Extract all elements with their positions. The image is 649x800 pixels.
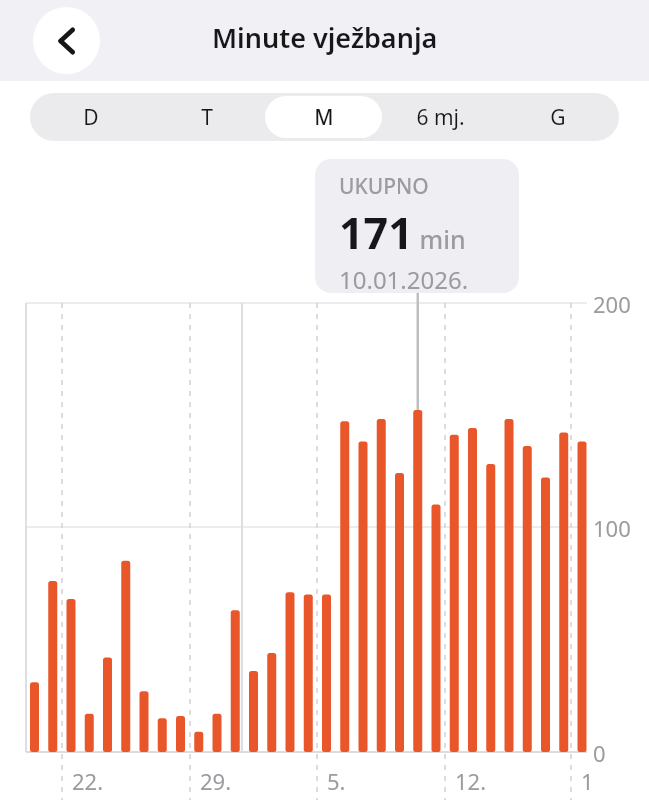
staticText: 6 mj. [416, 103, 465, 132]
staticText: 1 [581, 766, 594, 796]
staticText: min [413, 222, 466, 256]
staticText: 171 [339, 203, 413, 262]
staticText: 200 [593, 289, 631, 319]
staticText: 5. [327, 766, 346, 796]
button[interactable]: 6 mj. [382, 96, 499, 138]
staticText: T [201, 103, 213, 132]
staticText: UKUPNO [339, 172, 429, 201]
staticText: 29. [200, 766, 232, 796]
button[interactable]: D [33, 96, 149, 138]
staticText: D [83, 103, 99, 132]
staticText: Minute vježbanja [212, 19, 438, 56]
staticText: 12. [455, 766, 487, 796]
button[interactable]: M [265, 96, 382, 138]
staticText: G [550, 103, 566, 132]
button[interactable]: UKUPNO [315, 159, 519, 293]
staticText: 0 [593, 738, 606, 768]
staticText: 10.01.2026. [339, 263, 469, 293]
button[interactable]: T [149, 96, 265, 138]
staticText: M [314, 103, 334, 132]
staticText: 100 [593, 513, 631, 543]
button[interactable]: G [499, 96, 616, 138]
staticText: 22. [72, 766, 104, 796]
button[interactable]: Back [33, 7, 100, 74]
